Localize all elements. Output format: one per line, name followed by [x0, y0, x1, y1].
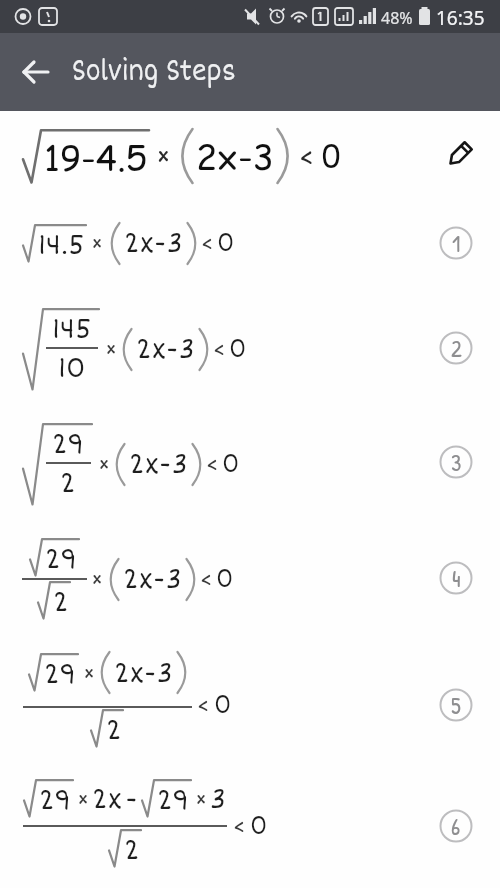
staticText: Solving Steps — [72, 52, 236, 89]
staticText: 2x-3 — [124, 226, 183, 260]
staticText: 2x-3 — [196, 132, 274, 181]
staticText: < — [233, 812, 245, 840]
staticText: < — [197, 691, 209, 719]
staticText: 0 — [214, 690, 232, 721]
button[interactable]: 145 — [22, 305, 247, 393]
staticText: 2x — [92, 782, 122, 816]
staticText: × — [91, 565, 103, 593]
button[interactable]: 4 — [439, 561, 473, 595]
staticText: 2x-3 — [136, 332, 195, 366]
staticText: 3 — [451, 447, 462, 478]
staticText: 5 — [451, 690, 461, 721]
button[interactable]: 19-4.5 — [22, 127, 341, 185]
staticText: 2 — [124, 833, 140, 867]
staticText: 2 — [53, 585, 69, 619]
button[interactable] — [14, 50, 58, 94]
staticText: 0 — [217, 228, 235, 259]
button[interactable]: 5 — [439, 688, 473, 722]
staticText: 29 — [52, 427, 85, 461]
staticText: 0 — [222, 449, 240, 480]
staticText: 2x-3 — [114, 656, 173, 690]
button[interactable]: 1 — [439, 226, 473, 260]
button[interactable]: 29 — [23, 649, 232, 749]
staticText: 14.5 — [38, 228, 85, 262]
staticText: × — [105, 335, 117, 363]
staticText: 2 — [60, 466, 76, 500]
staticText: 2 — [106, 713, 122, 747]
button[interactable]: 6 — [439, 809, 473, 843]
button[interactable]: 3 — [439, 445, 473, 479]
staticText: 19-4.5 — [44, 133, 148, 182]
staticText: 10 — [58, 351, 86, 385]
staticText: 29 — [44, 657, 77, 691]
staticText: < — [206, 450, 218, 478]
staticText: 2 — [451, 333, 462, 364]
button[interactable]: 29 — [23, 775, 268, 871]
staticText: 1 — [452, 228, 461, 259]
staticText: 29 — [45, 542, 78, 576]
staticText: 29 — [39, 783, 72, 817]
staticText: 0 — [216, 564, 234, 595]
staticText: 4 — [452, 563, 461, 594]
staticText: - — [125, 782, 138, 816]
button[interactable] — [441, 137, 477, 173]
staticText: 16:35 — [436, 5, 485, 31]
button[interactable]: 29 — [22, 536, 234, 622]
button[interactable]: 2 — [439, 331, 473, 365]
staticText: 29 — [157, 783, 190, 817]
staticText: 2x-3 — [123, 562, 182, 596]
staticText: 0 — [250, 811, 268, 842]
staticText: 6 — [451, 811, 461, 842]
staticText: 145 — [52, 312, 92, 346]
staticText: × — [77, 785, 89, 813]
staticText: 2x-3 — [129, 447, 188, 481]
staticText: × — [98, 450, 110, 478]
staticText: 0 — [229, 334, 247, 365]
staticText: 48% — [381, 7, 413, 29]
staticText: < — [200, 565, 212, 593]
staticText: < — [299, 139, 314, 173]
staticText: 0 — [322, 135, 341, 177]
staticText: × — [83, 659, 95, 687]
staticText: 3 — [210, 782, 227, 816]
button[interactable]: 14.5 — [22, 220, 235, 266]
staticText: × — [156, 139, 171, 173]
staticText: × — [195, 785, 207, 813]
staticText: < — [213, 335, 225, 363]
button[interactable]: 29 — [22, 420, 240, 508]
staticText: × — [91, 229, 103, 257]
staticText: < — [201, 229, 213, 257]
